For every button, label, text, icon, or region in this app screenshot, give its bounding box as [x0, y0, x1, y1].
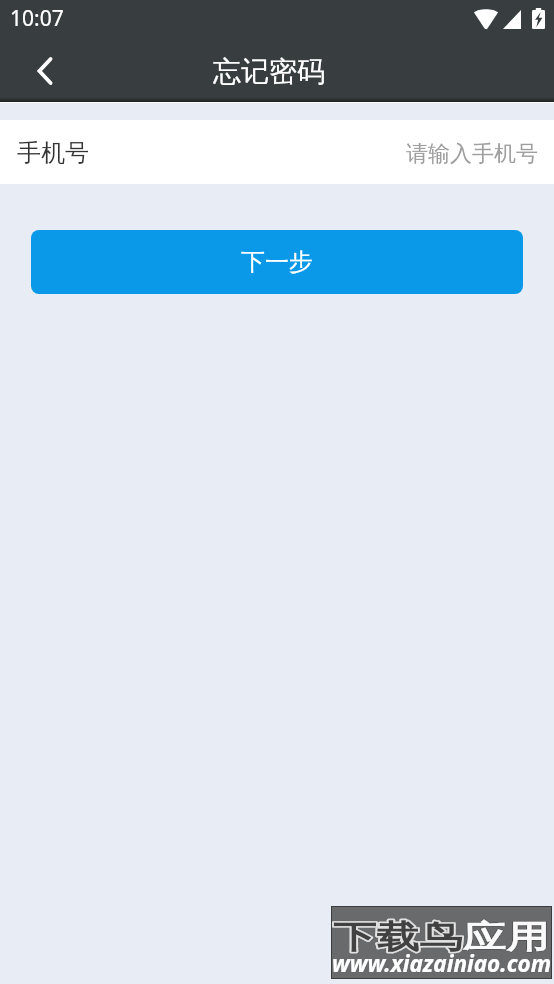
staticText: 请输入手机号 [406, 140, 538, 168]
staticText: 手机号 [17, 138, 89, 168]
staticText: www.xiazainiao.com [332, 948, 552, 979]
staticText: 应用 [463, 916, 549, 957]
staticText: 下载鸟 [333, 916, 463, 957]
staticText: 10:07 [10, 4, 64, 33]
staticText: 应用 [463, 916, 549, 957]
button[interactable]: 手机号 [0, 120, 554, 184]
button[interactable]: Back [20, 46, 70, 96]
staticText: 下载鸟 [333, 916, 463, 957]
staticText: 下一步 [241, 247, 313, 277]
staticText: 忘记密码 [213, 54, 325, 89]
button[interactable]: 下一步 [31, 230, 523, 294]
